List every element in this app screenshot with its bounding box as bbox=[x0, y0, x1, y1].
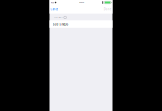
staticText: bob's mcDo bbox=[52, 23, 68, 26]
staticText: 1:44 PM bbox=[78, 1, 83, 4]
staticText: NEARBY bbox=[53, 16, 62, 19]
staticText: iPad bbox=[51, 1, 54, 4]
staticText: Done bbox=[104, 8, 111, 11]
staticText: Cancel bbox=[50, 8, 58, 11]
button[interactable]: bob's mcDo bbox=[49, 20, 112, 28]
button[interactable]: Cancel bbox=[49, 5, 60, 14]
button[interactable]: Done bbox=[102, 5, 112, 14]
